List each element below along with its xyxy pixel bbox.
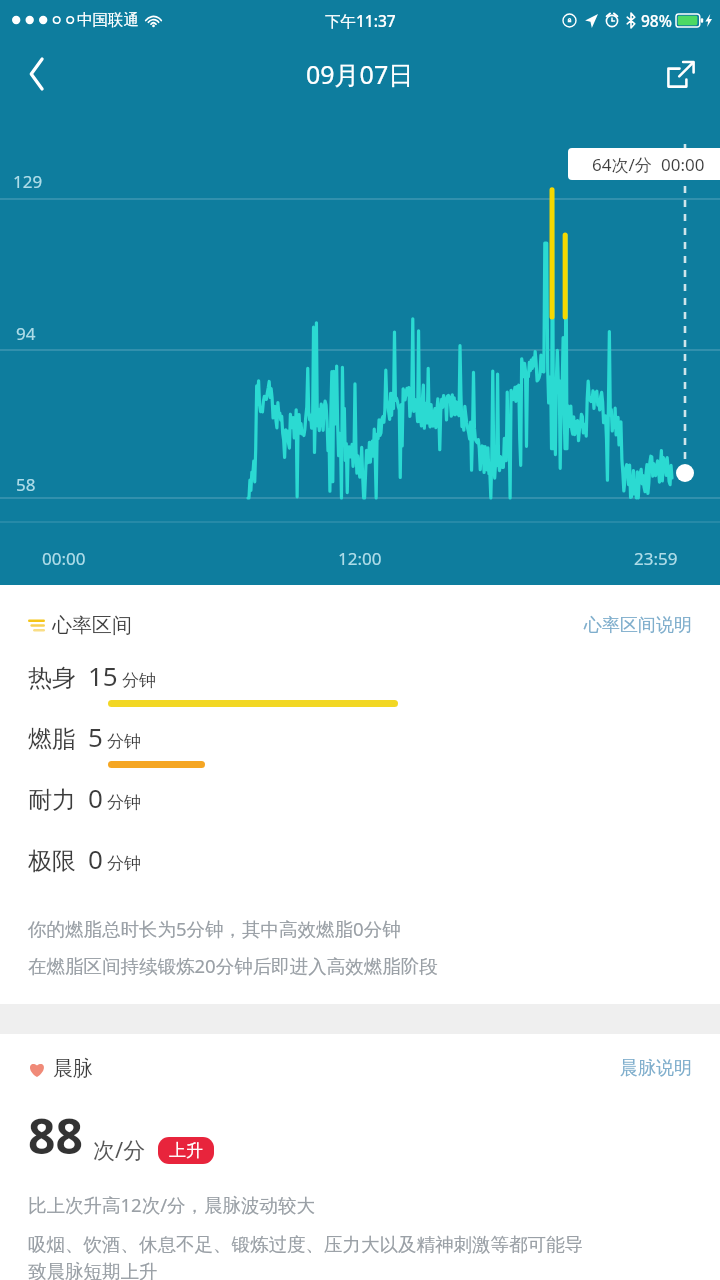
button[interactable]: Share bbox=[654, 47, 708, 101]
button[interactable]: 耐力 bbox=[0, 780, 720, 841]
staticText: 分钟 bbox=[107, 792, 141, 813]
staticText: 热身 bbox=[28, 663, 76, 693]
staticText: 98% bbox=[641, 10, 672, 31]
staticText: 00:00 bbox=[42, 547, 86, 570]
staticText: 00:00 bbox=[661, 153, 705, 176]
button[interactable]: 极限 bbox=[0, 841, 720, 902]
staticText: 心率区间说明 bbox=[584, 614, 692, 637]
staticText: 在燃脂区间持续锻炼20分钟后即进入高效燃脂阶段 bbox=[28, 953, 438, 978]
staticText: 下午11:37 bbox=[325, 10, 396, 31]
staticText: 极限 bbox=[28, 846, 76, 876]
staticText: 上升 bbox=[169, 1140, 203, 1161]
staticText: 吸烟、饮酒、休息不足、锻炼过度、压力大以及精神刺激等都可能导 bbox=[28, 1233, 583, 1256]
staticText: 15 bbox=[88, 658, 118, 693]
staticText: 64次/分 bbox=[592, 153, 652, 176]
staticText: 0 bbox=[88, 841, 103, 876]
button[interactable]: 晨脉说明 bbox=[620, 1057, 692, 1080]
staticText: 0 bbox=[88, 780, 103, 815]
button[interactable]: 热身 bbox=[0, 658, 720, 719]
button[interactable]: 心率区间说明 bbox=[584, 614, 692, 637]
staticText: 你的燃脂总时长为5分钟，其中高效燃脂0分钟 bbox=[28, 916, 401, 941]
staticText: 晨脉 bbox=[53, 1056, 93, 1081]
staticText: 分钟 bbox=[122, 670, 156, 691]
staticText: 129 bbox=[13, 170, 43, 193]
staticText: 12:00 bbox=[338, 547, 382, 570]
staticText: 致晨脉短期上升 bbox=[28, 1260, 158, 1280]
staticText: 心率区间 bbox=[52, 613, 132, 638]
staticText: 比上次升高12次/分，晨脉波动较大 bbox=[28, 1192, 316, 1217]
staticText: 分钟 bbox=[107, 853, 141, 874]
staticText: 次/分 bbox=[93, 1134, 146, 1164]
staticText: 晨脉说明 bbox=[620, 1057, 692, 1080]
staticText: 耐力 bbox=[28, 785, 76, 815]
staticText: 燃脂 bbox=[28, 724, 76, 754]
button[interactable]: Back bbox=[10, 47, 64, 101]
staticText: 中国联通 bbox=[77, 10, 139, 30]
staticText: 09月07日 bbox=[306, 57, 414, 91]
staticText: 94 bbox=[16, 322, 36, 345]
button[interactable]: 上升 bbox=[169, 1140, 203, 1161]
button[interactable]: 燃脂 bbox=[0, 719, 720, 780]
staticText: 分钟 bbox=[107, 731, 141, 752]
staticText: 5 bbox=[88, 719, 103, 754]
staticText: 23:59 bbox=[634, 547, 678, 570]
staticText: 58 bbox=[16, 473, 36, 496]
staticText: 88 bbox=[28, 1103, 83, 1168]
